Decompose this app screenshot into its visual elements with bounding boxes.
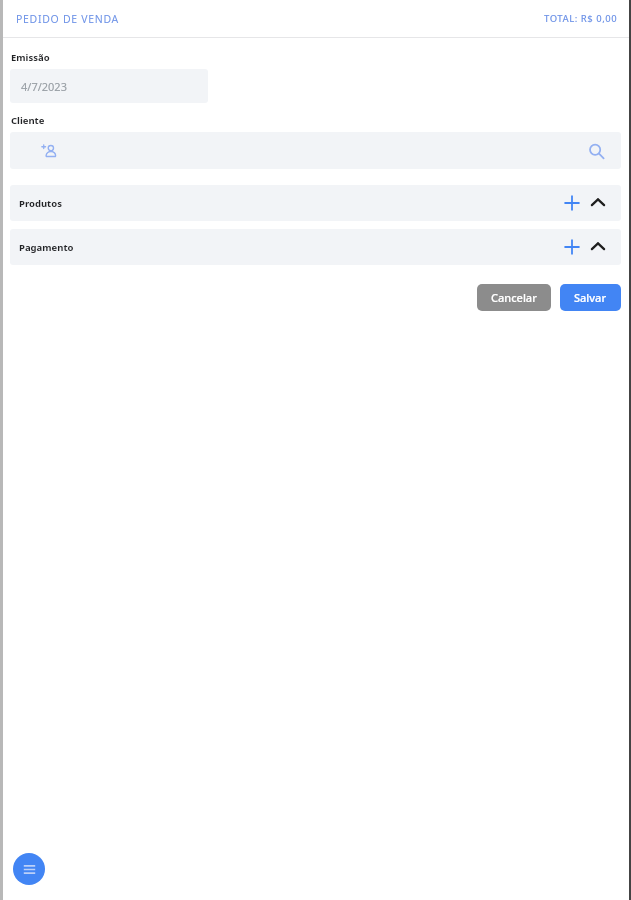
button[interactable]: Adicionar Produtos	[559, 190, 585, 216]
staticText: PEDIDO DE VENDA	[16, 12, 120, 26]
staticText: Cancelar	[491, 290, 537, 305]
button[interactable]: Recolher Produtos	[585, 190, 611, 216]
staticText: 4/7/2023	[21, 79, 67, 94]
button[interactable]: Adicionar Pagamento	[559, 234, 585, 260]
button[interactable]: Adicionar cliente	[36, 138, 62, 164]
button[interactable]: Menu	[13, 853, 45, 885]
button[interactable]: 4/7/2023	[10, 69, 208, 103]
button[interactable]: Produtos	[10, 185, 621, 221]
button[interactable]: PEDIDO DE VENDA	[0, 0, 631, 37]
button[interactable]: Pagamento	[10, 229, 621, 265]
button[interactable]: Buscar cliente	[583, 138, 609, 164]
button[interactable]: Salvar	[560, 284, 621, 311]
staticText: Emissão	[11, 51, 50, 64]
button[interactable]: Cancelar	[477, 284, 551, 311]
staticText: Cliente	[11, 114, 45, 127]
staticText: Salvar	[574, 290, 607, 305]
button[interactable]: Recolher Pagamento	[585, 234, 611, 260]
staticText: Produtos	[19, 197, 62, 210]
staticText: TOTAL: R$ 0,00	[544, 12, 618, 25]
staticText: Pagamento	[19, 241, 74, 254]
